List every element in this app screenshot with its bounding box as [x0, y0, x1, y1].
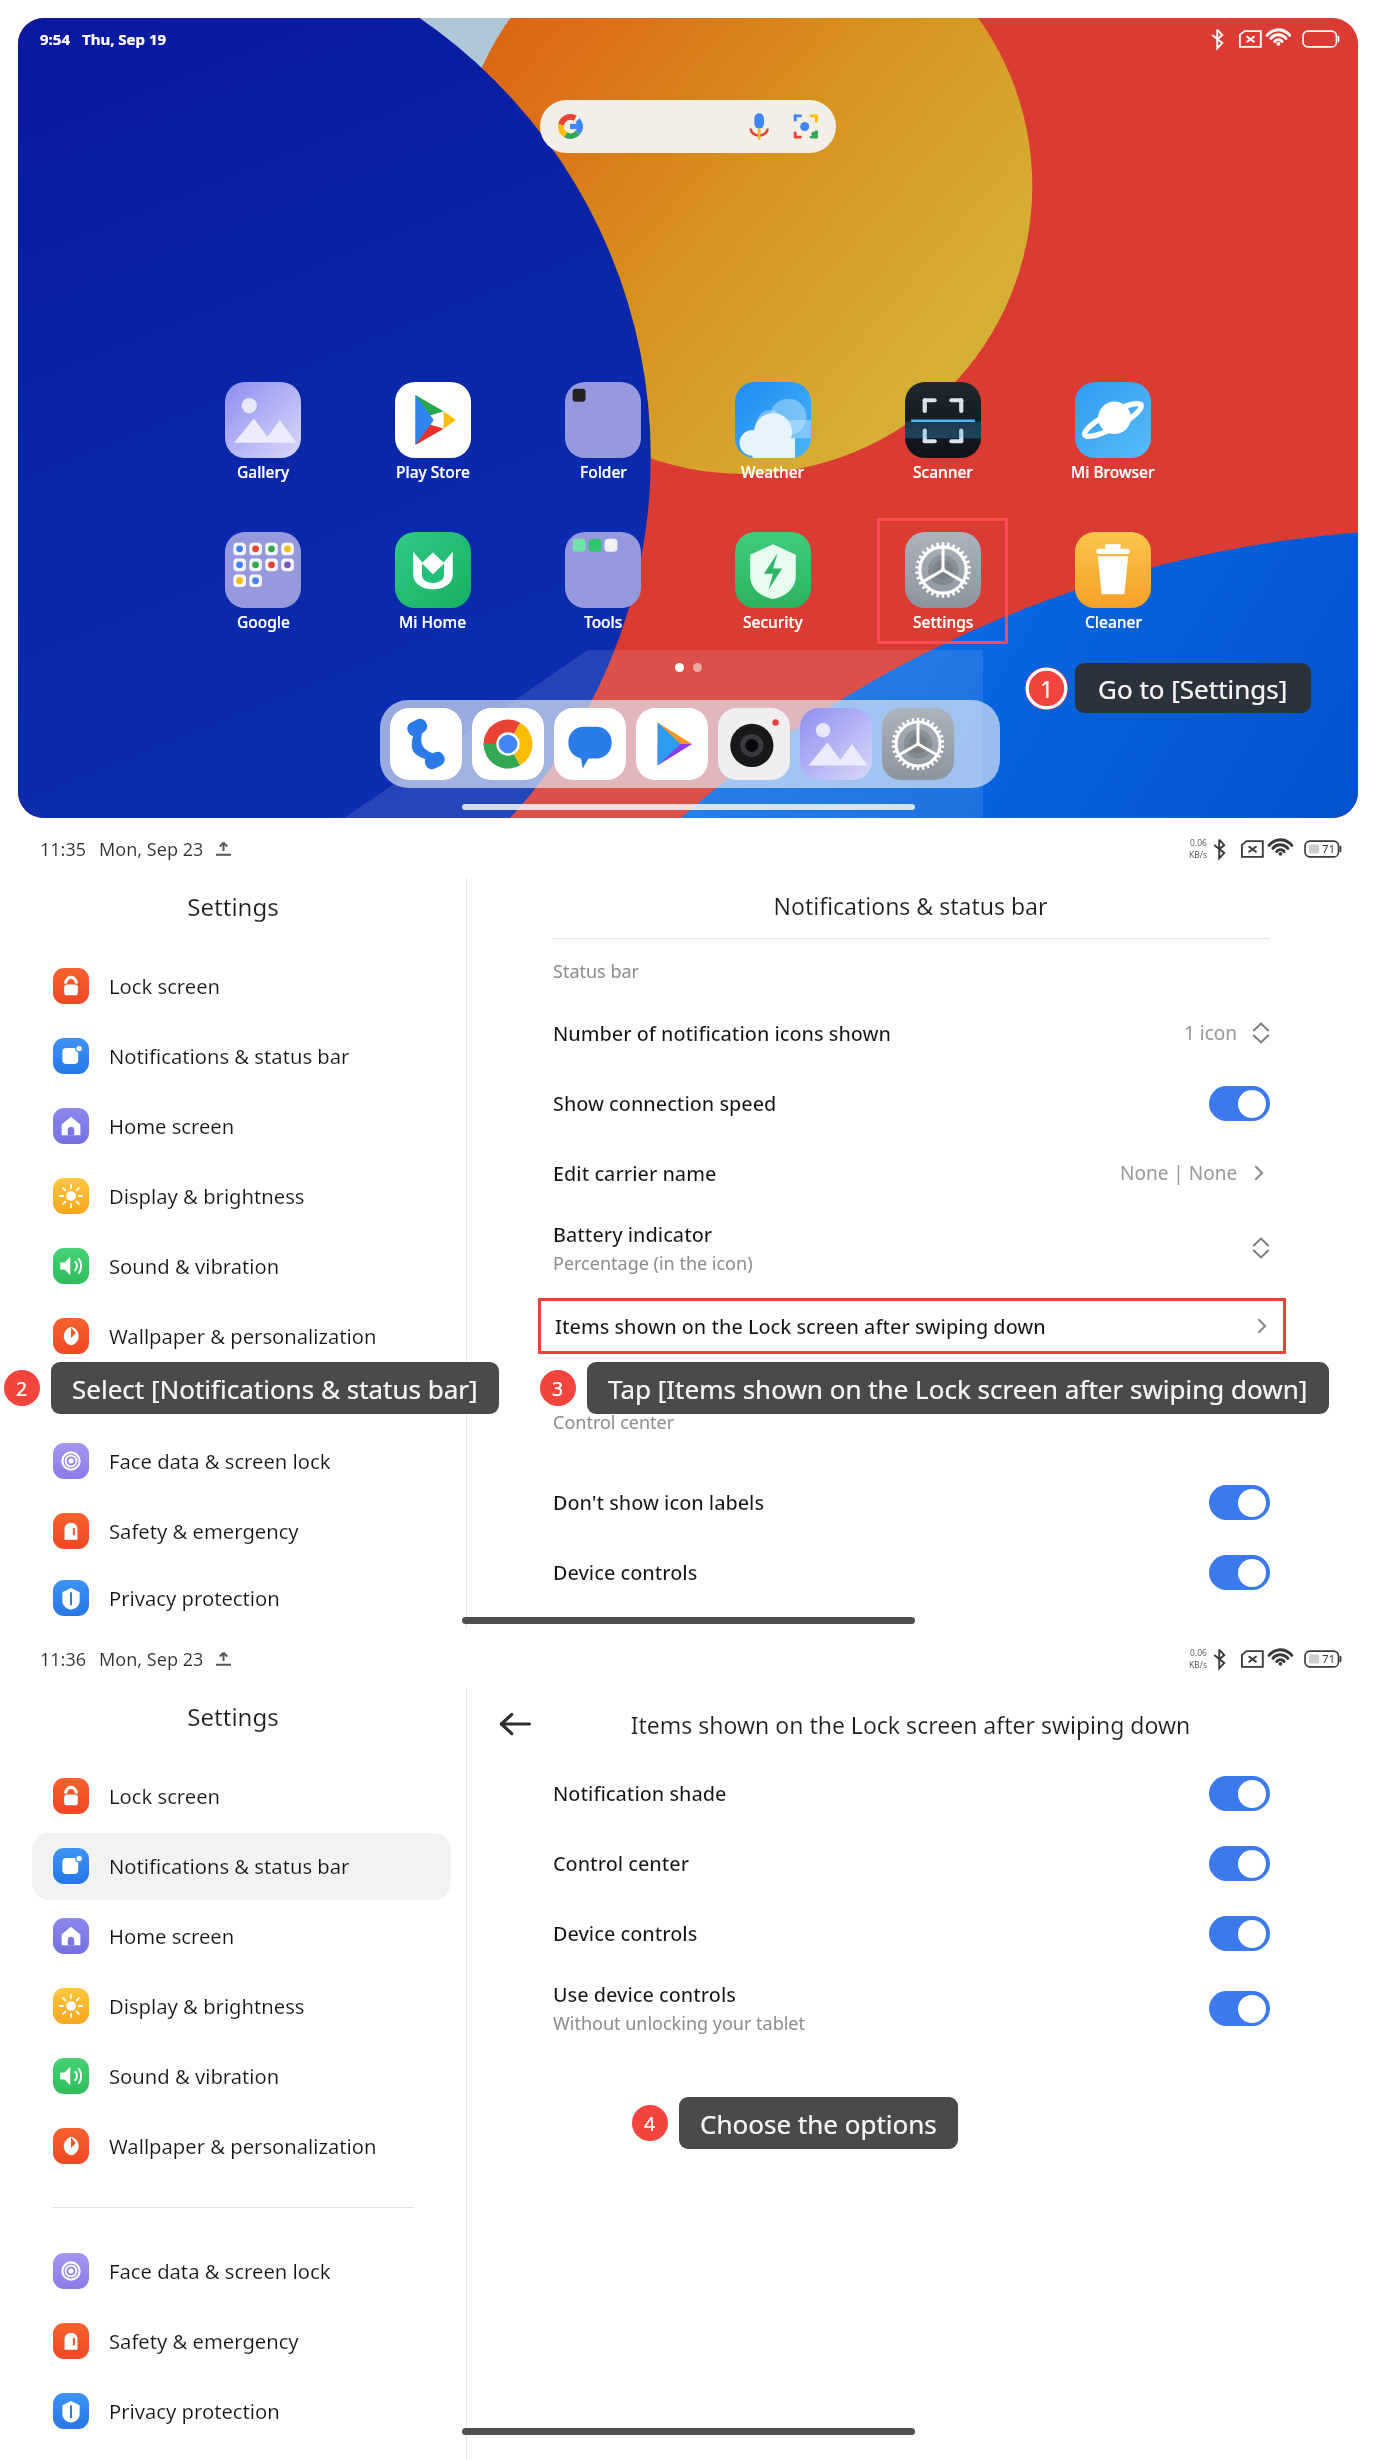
button[interactable]: Privacy protection — [32, 2376, 451, 2446]
staticText: Mi Home — [399, 611, 467, 632]
staticText: Gallery — [237, 461, 290, 482]
staticText: Mi Browser — [1071, 461, 1155, 482]
staticText: Notifications & status bar — [109, 1852, 350, 1880]
button[interactable]: Show connection speed — [467, 1068, 1376, 1138]
staticText: Safety & emergency — [109, 1517, 299, 1545]
button[interactable]: Wallpaper & personalization — [32, 1301, 451, 1371]
button[interactable]: Dock app — [472, 708, 544, 780]
button[interactable]: Dock app — [636, 708, 708, 780]
button[interactable]: Play Store — [357, 382, 509, 482]
staticText: 9:54 — [40, 29, 70, 49]
button[interactable]: Use device controls — [467, 1968, 1376, 2048]
button[interactable]: Settings — [867, 532, 1019, 632]
button[interactable]: Weather — [697, 382, 849, 482]
staticText: Notification shade — [553, 1780, 727, 1807]
staticText: Safety & emergency — [109, 2327, 299, 2355]
button[interactable]: Tools — [527, 532, 679, 632]
staticText: Mon, Sep 23 — [99, 1647, 204, 1672]
button[interactable]: Home screen — [32, 1901, 451, 1971]
staticText: Face data & screen lock — [109, 1447, 331, 1475]
staticText: 4 — [644, 2110, 656, 2136]
staticText: Settings — [913, 611, 974, 632]
button[interactable]: Sound & vibration — [32, 1231, 451, 1301]
staticText: Lock screen — [109, 1782, 221, 1810]
staticText: Folder — [580, 461, 627, 482]
staticText: Notifications & status bar — [467, 890, 1354, 921]
staticText: Device controls — [553, 1920, 698, 1947]
button[interactable]: Number of notification icons shown — [467, 998, 1376, 1068]
button[interactable]: Dock app — [390, 708, 462, 780]
staticText: Sound & vibration — [109, 1252, 280, 1280]
button[interactable]: Device controls — [467, 1537, 1376, 1607]
button[interactable]: Dock app — [800, 708, 872, 780]
button[interactable]: Toggle — [1209, 1555, 1270, 1590]
button[interactable]: Home screen — [32, 1091, 451, 1161]
button[interactable]: Toggle — [1209, 1846, 1270, 1881]
button[interactable]: Lock screen — [32, 1761, 451, 1831]
staticText: Security — [743, 611, 803, 632]
staticText: 71 — [1322, 1651, 1336, 1667]
button[interactable]: Mi Browser — [1037, 382, 1189, 482]
button[interactable]: Notification shade — [467, 1758, 1376, 1828]
staticText: Weather — [741, 461, 805, 482]
button[interactable]: Toggle — [1209, 1776, 1270, 1811]
button[interactable]: Toggle — [1209, 1991, 1270, 2026]
staticText: Home screen — [109, 1922, 235, 1950]
button[interactable]: Notifications & status bar — [32, 1021, 451, 1091]
staticText: Wallpaper & personalization — [109, 2132, 377, 2160]
button[interactable]: Search — [540, 100, 836, 153]
staticText: Control center — [553, 1410, 675, 1435]
staticText: Privacy protection — [109, 1584, 280, 1612]
button[interactable]: Sound & vibration — [32, 2041, 451, 2111]
staticText: Display & brightness — [109, 1182, 305, 1210]
staticText: 11:35 — [40, 837, 87, 862]
button[interactable]: Control center — [467, 1828, 1376, 1898]
button[interactable]: Mi Home — [357, 532, 509, 632]
button[interactable]: Safety & emergency — [32, 1496, 451, 1566]
button[interactable]: Toggle — [1209, 1086, 1270, 1121]
button[interactable]: Wallpaper & personalization — [32, 2111, 451, 2181]
staticText: Scanner — [913, 461, 973, 482]
button[interactable]: Security — [697, 532, 849, 632]
staticText: 1 icon — [1184, 1020, 1238, 1046]
button[interactable]: Scanner — [867, 382, 1019, 482]
button[interactable]: Device controls — [467, 1898, 1376, 1968]
button[interactable]: Lock screen — [32, 951, 451, 1021]
button[interactable]: Display & brightness — [32, 1971, 451, 2041]
staticText: Face data & screen lock — [109, 2257, 331, 2285]
button[interactable]: Privacy protection — [32, 1566, 451, 1630]
button[interactable]: Items shown on the Lock screen after swi… — [538, 1298, 1286, 1354]
button[interactable]: Toggle — [1209, 1916, 1270, 1951]
button[interactable]: Face data & screen lock — [32, 2236, 451, 2306]
button[interactable]: Back — [495, 1704, 535, 1744]
staticText: Google — [237, 611, 290, 632]
button[interactable]: Safety & emergency — [32, 2306, 451, 2376]
button[interactable]: Display & brightness — [32, 1161, 451, 1231]
button[interactable]: Google — [187, 532, 339, 632]
button[interactable]: Face data & screen lock — [32, 1426, 451, 1496]
staticText: Play Store — [396, 461, 470, 482]
staticText: Items shown on the Lock screen after swi… — [555, 1313, 1046, 1340]
button[interactable]: Cleaner — [1037, 532, 1189, 632]
button[interactable]: Notifications & status bar — [32, 1831, 451, 1901]
staticText: Percentage (in the icon) — [553, 1251, 753, 1276]
staticText: Items shown on the Lock screen after swi… — [467, 1709, 1354, 1740]
button[interactable]: Dock app — [718, 708, 790, 780]
button[interactable]: Battery indicator — [467, 1208, 1376, 1288]
staticText: Display & brightness — [109, 1992, 305, 2020]
staticText: Control center — [553, 1850, 690, 1877]
staticText: 0.06 — [1190, 1647, 1207, 1659]
staticText: Wallpaper & personalization — [109, 1322, 377, 1350]
button[interactable]: Gallery — [187, 382, 339, 482]
staticText: Choose the options — [700, 2106, 937, 2141]
button[interactable]: Dock app — [882, 708, 954, 780]
staticText: Home screen — [109, 1112, 235, 1140]
staticText: Settings — [0, 1700, 466, 1733]
button[interactable]: Dock app — [554, 708, 626, 780]
staticText: KB/s — [1189, 849, 1208, 861]
button[interactable]: Toggle — [1209, 1485, 1270, 1520]
button[interactable]: Don't show icon labels — [467, 1467, 1376, 1537]
button[interactable]: Edit carrier name — [467, 1138, 1376, 1208]
button[interactable]: Folder — [527, 382, 679, 482]
staticText: Edit carrier name — [553, 1160, 717, 1187]
